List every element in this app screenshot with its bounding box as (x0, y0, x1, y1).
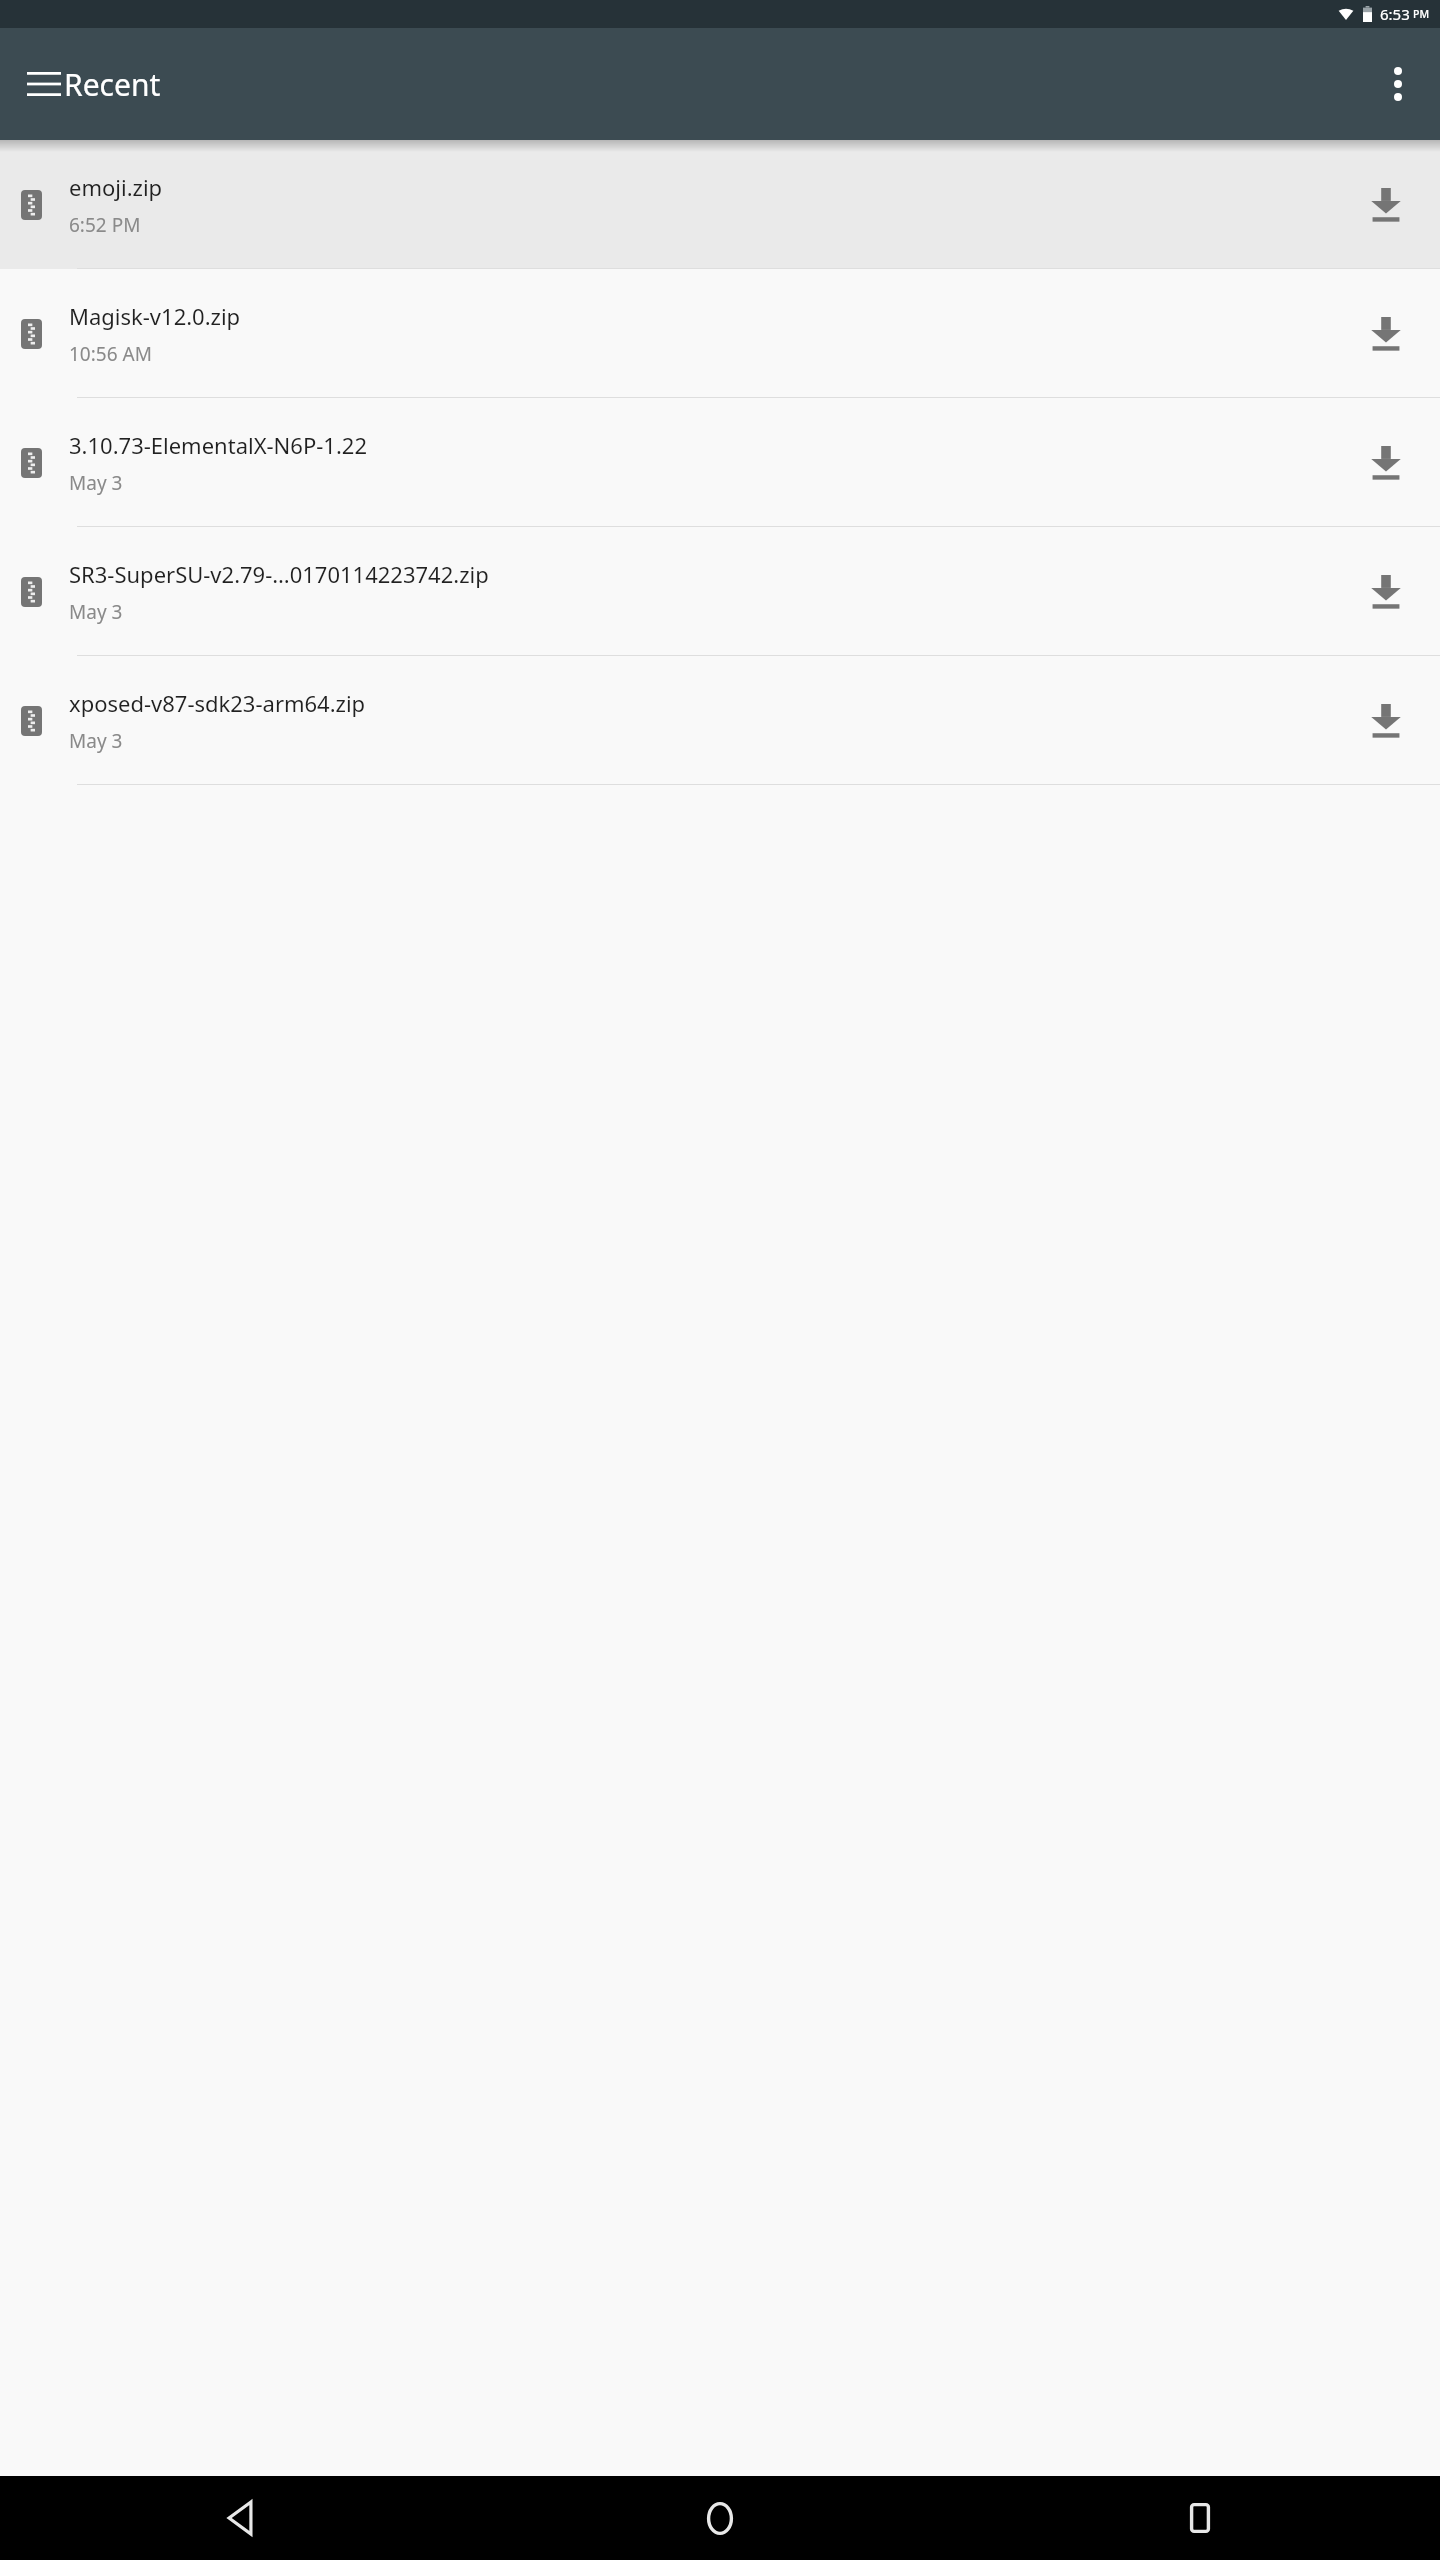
staticText: Magisk-v12.0.zip (69, 301, 241, 331)
button[interactable]: Download (1356, 175, 1416, 235)
button[interactable]: Download (1356, 304, 1416, 364)
staticText: 6:52 PM (69, 212, 141, 238)
button[interactable]: Home (480, 2476, 960, 2560)
staticText: PM (1413, 7, 1430, 21)
button[interactable]: Download (1356, 562, 1416, 622)
button[interactable]: Magisk-v12.0.zip (0, 269, 1440, 398)
staticText: May 3 (69, 470, 123, 496)
staticText: SR3-SuperSU-v2.79-…0170114223742.zip (69, 559, 489, 589)
button[interactable]: Download (1356, 691, 1416, 751)
staticText: 10:56 AM (69, 341, 152, 367)
staticText: Recent (64, 64, 161, 105)
button[interactable]: Download (1356, 433, 1416, 493)
staticText: xposed-v87-sdk23-arm64.zip (69, 688, 366, 718)
button[interactable]: Back (0, 2476, 480, 2560)
staticText: May 3 (69, 599, 123, 625)
staticText: 6:53 (1380, 4, 1410, 24)
staticText: May 3 (69, 728, 123, 754)
staticText: emoji.zip (69, 172, 163, 202)
button[interactable]: Recent apps (960, 2476, 1440, 2560)
button[interactable]: More options (1362, 48, 1434, 120)
button[interactable]: 3.10.73-ElementalX-N6P-1.22 (0, 398, 1440, 527)
button[interactable]: emoji.zip (0, 140, 1440, 269)
button[interactable]: SR3-SuperSU-v2.79-…0170114223742.zip (0, 527, 1440, 656)
button[interactable]: xposed-v87-sdk23-arm64.zip (0, 656, 1440, 785)
button[interactable]: Open navigation drawer (8, 48, 80, 120)
staticText: 3.10.73-ElementalX-N6P-1.22 (69, 430, 367, 460)
